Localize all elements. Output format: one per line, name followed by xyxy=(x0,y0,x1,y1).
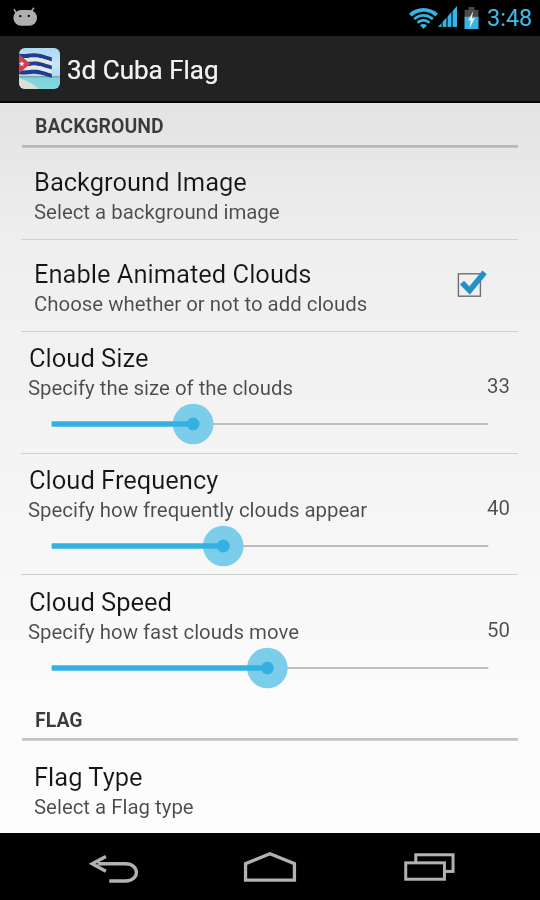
button[interactable]: Flag Type xyxy=(0,762,540,836)
staticText: 33 xyxy=(487,374,510,398)
button[interactable]: Cloud Speed xyxy=(0,587,540,695)
staticText: Specify the size of the clouds xyxy=(28,376,293,400)
button[interactable]: Home xyxy=(210,833,330,900)
staticText: Cloud Speed xyxy=(29,587,172,617)
staticText: Specify how fast clouds move xyxy=(28,620,299,644)
staticText: 40 xyxy=(487,496,510,520)
staticText: Select a Flag type xyxy=(34,795,194,819)
staticText: Background Image xyxy=(34,167,247,197)
button[interactable]: Back xyxy=(55,835,175,900)
staticText: Select a background image xyxy=(34,200,280,224)
button[interactable]: Background Image xyxy=(0,167,540,241)
staticText: Flag Type xyxy=(34,762,143,792)
button[interactable]: Recent apps xyxy=(369,833,489,900)
staticText: Specify how frequently clouds appear xyxy=(28,498,368,522)
staticText: BACKGROUND xyxy=(35,115,164,138)
staticText: Choose whether or not to add clouds xyxy=(34,292,368,316)
staticText: 50 xyxy=(487,618,510,642)
staticText: 3d Cuba Flag xyxy=(67,55,219,85)
staticText: Cloud Frequency xyxy=(29,465,219,495)
button[interactable]: Cloud Frequency xyxy=(0,465,540,573)
button[interactable]: 3d Cuba Flag xyxy=(0,36,540,102)
staticText: Enable Animated Clouds xyxy=(34,259,312,289)
staticText: 3:48 xyxy=(487,4,533,32)
button[interactable]: Cloud Size xyxy=(0,343,540,451)
staticText: Cloud Size xyxy=(29,343,149,373)
button[interactable]: Enable Animated Clouds xyxy=(0,259,540,333)
staticText: FLAG xyxy=(35,709,83,732)
